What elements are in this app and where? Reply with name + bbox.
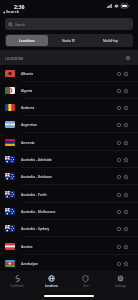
staticText: Surfshark <box>10 284 24 288</box>
other: Server status <box>116 244 122 250</box>
button[interactable]: Favourite <box>123 105 129 111</box>
staticText: Static IP <box>62 38 76 43</box>
staticText: Australia - Sydney <box>21 226 50 231</box>
button[interactable]: Australia - Sydney <box>0 220 138 237</box>
button[interactable]: Australia - Perth <box>0 186 138 203</box>
staticText: Locations <box>45 284 58 288</box>
button[interactable]: Settings <box>103 275 138 289</box>
other: Server status <box>116 209 122 215</box>
button[interactable]: Favourite <box>123 244 129 250</box>
other: Server status <box>116 192 122 198</box>
button[interactable]: Andorra <box>0 99 138 116</box>
button[interactable]: Locations <box>34 275 68 289</box>
button[interactable]: Favourite <box>123 226 129 232</box>
other: Server status <box>116 140 122 146</box>
staticText: 2:36 <box>14 3 25 10</box>
staticText: Australia - Brisbane <box>21 174 52 179</box>
button[interactable]: Favourite <box>123 88 129 94</box>
button[interactable]: Azerbaijan <box>0 255 138 272</box>
button[interactable]: Argentina <box>0 116 138 133</box>
button[interactable]: One <box>68 275 103 289</box>
button[interactable]: Search <box>5 18 133 30</box>
staticText: Australia - Perth <box>21 192 47 197</box>
staticText: Locations <box>19 38 35 43</box>
button[interactable]: Favourite <box>123 174 129 180</box>
staticText: Argentina <box>21 122 37 127</box>
button[interactable]: Surfshark <box>0 275 34 289</box>
staticText: Austria <box>21 244 33 249</box>
button[interactable]: Favourite <box>123 122 129 128</box>
button[interactable]: Armenia <box>0 134 138 151</box>
button[interactable]: Static IP <box>48 35 90 46</box>
button[interactable]: Favourite <box>123 261 129 267</box>
staticText: MultiHop <box>103 38 119 43</box>
button[interactable]: Favourite <box>123 209 129 215</box>
button[interactable]: Favourite <box>123 157 129 163</box>
staticText: Azerbaijan <box>21 261 38 266</box>
other: Server status <box>116 122 122 128</box>
other: Server status <box>116 105 122 111</box>
other: Server status <box>116 174 122 180</box>
staticText: Search <box>15 23 26 27</box>
button[interactable]: Austria <box>0 238 138 255</box>
staticText: Andorra <box>21 105 35 110</box>
staticText: Algeria <box>21 88 33 93</box>
staticText: Albania <box>21 71 33 76</box>
staticText: Armenia <box>21 140 35 145</box>
button[interactable]: Australia - Adelaide <box>0 151 138 168</box>
button[interactable]: Australia - Melbourne <box>0 203 138 220</box>
other: Server status <box>116 71 122 77</box>
staticText: Search <box>6 9 20 15</box>
staticText: Settings <box>115 284 126 288</box>
button[interactable]: Australia - Brisbane <box>0 168 138 185</box>
staticText: One <box>83 284 89 288</box>
staticText: Australia - Adelaide <box>21 157 52 162</box>
staticText: Australia - Melbourne <box>21 209 56 214</box>
button[interactable]: Favourite <box>123 71 129 77</box>
staticText: LOCATIONS <box>5 56 24 60</box>
button[interactable]: MultiHop <box>90 35 132 46</box>
button[interactable]: Algeria <box>0 82 138 99</box>
other: Server status <box>116 226 122 232</box>
button[interactable]: Albania <box>0 65 138 82</box>
other: Server status <box>116 88 122 94</box>
other: Server status <box>116 261 122 267</box>
button[interactable]: Favourite <box>123 140 129 146</box>
button[interactable]: Locations <box>6 35 48 46</box>
other: Server status <box>116 157 122 163</box>
button[interactable]: Favourite <box>123 192 129 198</box>
button[interactable]: Info <box>125 55 131 61</box>
